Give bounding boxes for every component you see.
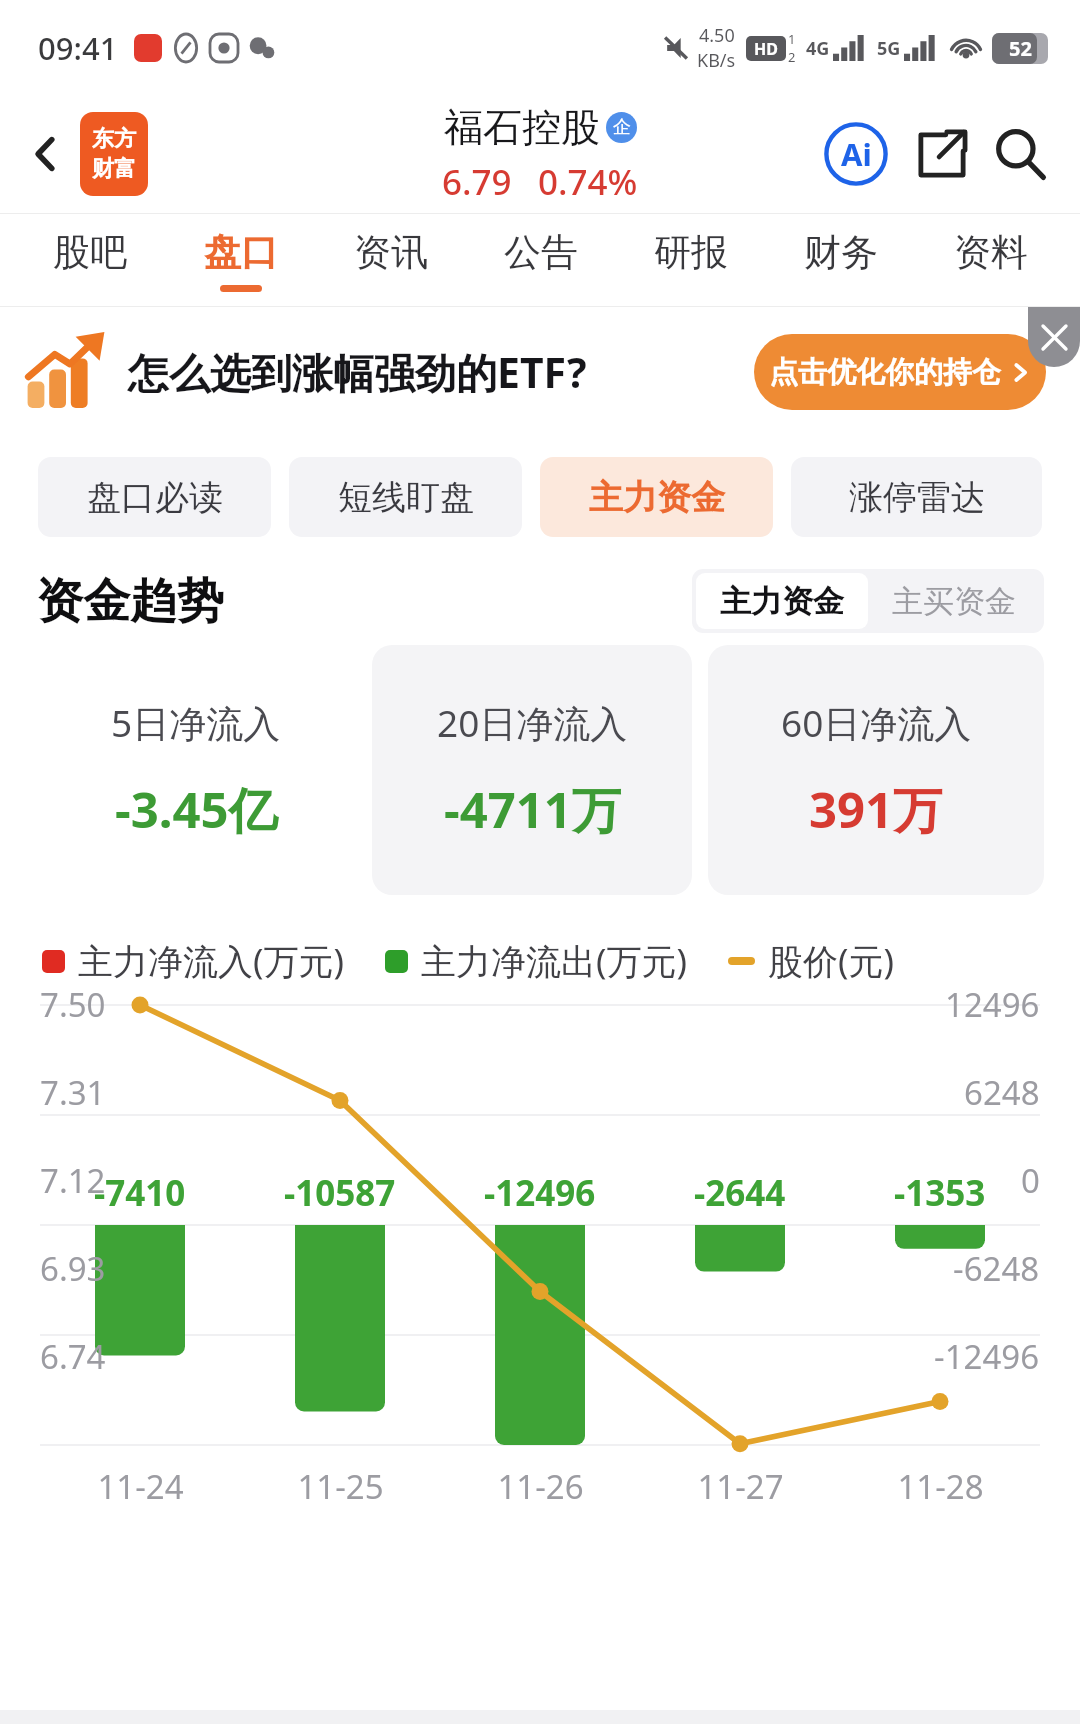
staticText: 资金趋势 (36, 572, 224, 631)
button[interactable]: 点击优化你的持仓 (754, 334, 1046, 410)
staticText: 6248 (964, 1070, 1040, 1115)
staticText: 391万 (809, 776, 943, 843)
button[interactable]: 公告 (466, 214, 616, 306)
button[interactable]: 5日净流入 (36, 645, 356, 895)
staticText: 企 (613, 116, 631, 139)
staticText: 11-28 (897, 1464, 984, 1509)
button[interactable]: 60日净流入 (708, 645, 1044, 895)
staticText: 财务 (804, 229, 878, 276)
staticText: 7.50 (40, 982, 106, 1027)
button[interactable]: East Money home (80, 112, 148, 196)
button[interactable]: Close ad (1028, 307, 1080, 367)
staticText: -12496 (484, 1169, 596, 1217)
staticText: -2644 (694, 1169, 786, 1217)
staticText: 怎么选到涨幅强劲的ETF? (128, 344, 587, 400)
staticText: 1 (788, 30, 796, 48)
staticText: 52 (1009, 35, 1032, 62)
staticText: 6.74 (40, 1334, 106, 1379)
staticText: 0 (1021, 1158, 1040, 1203)
staticText: 60日净流入 (781, 697, 972, 748)
staticText: -4711万 (444, 776, 621, 843)
staticText: 主力净流入(万元) (78, 937, 345, 985)
staticText: 资料 (954, 229, 1028, 276)
staticText: 7.12 (40, 1158, 106, 1203)
staticText: 东方 (92, 125, 136, 153)
staticText: HD (754, 38, 778, 60)
staticText: Ai (841, 133, 872, 175)
staticText: 2 (788, 48, 796, 66)
staticText: 11-25 (297, 1464, 384, 1509)
staticText: 点击优化你的持仓 (769, 354, 1001, 391)
staticText: 20日净流入 (437, 697, 628, 748)
staticText: 福石控股 (444, 103, 600, 152)
staticText: 短线盯盘 (338, 476, 474, 519)
staticText: -1353 (894, 1169, 986, 1217)
button[interactable]: 盘口 (165, 214, 316, 306)
button[interactable]: Search (986, 120, 1054, 188)
staticText: 09:41 (38, 27, 118, 69)
button[interactable]: 资讯 (316, 214, 466, 306)
staticText: 4G (806, 36, 830, 61)
staticText: 盘口 (204, 229, 278, 276)
staticText: 公告 (504, 229, 578, 276)
button[interactable]: 盘口必读 (38, 457, 271, 537)
staticText: 0.74% (538, 158, 638, 206)
button[interactable]: Share (908, 120, 976, 188)
button[interactable]: 资料 (916, 214, 1066, 306)
staticText: 股吧 (53, 229, 127, 276)
staticText: -7410 (94, 1169, 186, 1217)
staticText: -3.45亿 (115, 776, 278, 843)
staticText: 6.79 (442, 158, 512, 206)
button[interactable]: Back (18, 126, 74, 182)
button[interactable]: 短线盯盘 (289, 457, 522, 537)
staticText: 财富 (92, 155, 136, 183)
button[interactable]: 涨停雷达 (791, 457, 1042, 537)
staticText: -6248 (953, 1246, 1040, 1291)
staticText: 股价(元) (768, 937, 895, 985)
staticText: 11-26 (497, 1464, 584, 1509)
staticText: -12496 (934, 1334, 1040, 1379)
button[interactable]: 研报 (616, 214, 766, 306)
staticText: -10587 (284, 1169, 396, 1217)
staticText: KB/s (697, 48, 736, 73)
staticText: 5日净流入 (111, 697, 281, 748)
staticText: 主力资金 (720, 582, 844, 621)
staticText: 涨停雷达 (849, 476, 985, 519)
staticText: 4.50 (699, 23, 735, 48)
staticText: 12496 (945, 982, 1040, 1027)
staticText: 资讯 (354, 229, 428, 276)
staticText: 7.31 (40, 1070, 106, 1115)
staticText: 11-27 (697, 1464, 784, 1509)
staticText: 主力净流出(万元) (421, 937, 688, 985)
button[interactable]: AI assistant (818, 116, 894, 192)
staticText: 11-24 (97, 1464, 184, 1509)
staticText: 研报 (654, 229, 728, 276)
staticText: 盘口必读 (87, 476, 223, 519)
staticText: 6.93 (40, 1246, 106, 1291)
button[interactable]: 主买资金 (868, 573, 1040, 629)
staticText: 主买资金 (892, 582, 1016, 621)
button[interactable]: 主力资金 (540, 457, 773, 537)
staticText: 5G (877, 36, 901, 61)
button[interactable]: 主力资金 (696, 573, 868, 629)
button[interactable]: 20日净流入 (372, 645, 692, 895)
staticText: 主力资金 (589, 476, 725, 519)
button[interactable]: 股吧 (14, 214, 165, 306)
button[interactable]: 财务 (766, 214, 916, 306)
